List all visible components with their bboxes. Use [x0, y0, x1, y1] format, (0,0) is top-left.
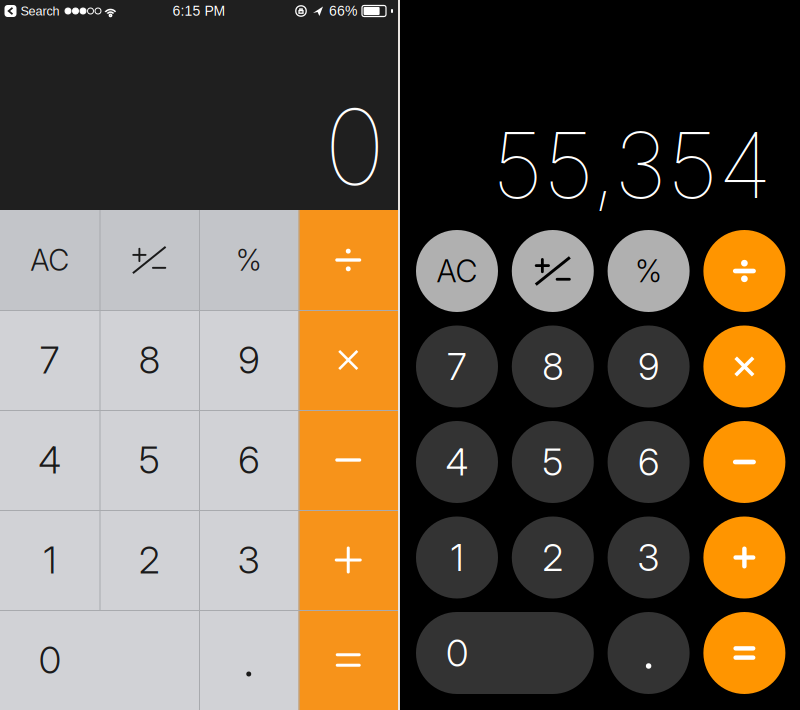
staticText: 5	[542, 439, 563, 485]
button[interactable]	[512, 230, 594, 312]
button[interactable]: 5	[99, 410, 199, 510]
button[interactable]: %	[608, 230, 690, 312]
staticText: 0	[39, 637, 61, 683]
staticText: 0	[446, 630, 468, 676]
button[interactable]	[199, 610, 298, 710]
button[interactable]	[703, 516, 785, 598]
button[interactable]: 8	[99, 310, 199, 410]
button[interactable]: 6	[608, 421, 690, 503]
staticText: 7	[40, 337, 60, 383]
staticText: AC	[436, 252, 477, 289]
button[interactable]	[298, 310, 398, 410]
button[interactable]	[703, 230, 785, 312]
staticText: 9	[238, 337, 259, 383]
staticText: AC	[30, 242, 69, 278]
staticText: 8	[542, 344, 563, 389]
button[interactable]: AC	[0, 210, 99, 310]
button[interactable]: 3	[608, 516, 690, 598]
button[interactable]	[99, 210, 199, 310]
staticText: 0	[324, 84, 385, 210]
button[interactable]: 3	[199, 510, 298, 610]
staticText: 1	[450, 535, 463, 580]
button[interactable]: 2	[99, 510, 199, 610]
button[interactable]: 7	[416, 325, 498, 407]
button[interactable]: 7	[0, 310, 99, 410]
button[interactable]: 5	[512, 421, 594, 503]
button[interactable]: 9	[199, 310, 298, 410]
button[interactable]: 9	[608, 325, 690, 407]
button[interactable]: 2	[512, 516, 594, 598]
button[interactable]	[703, 612, 785, 694]
staticText: 55,354	[492, 110, 772, 220]
button[interactable]	[608, 612, 690, 694]
staticText: 1	[43, 537, 56, 583]
button[interactable]: 0	[0, 610, 199, 710]
button[interactable]: 4	[416, 421, 498, 503]
button[interactable]: Back to Search	[0, 0, 59, 22]
staticText: 6	[638, 439, 659, 485]
button[interactable]: 1	[0, 510, 99, 610]
button[interactable]	[298, 410, 398, 510]
staticText: 8	[139, 337, 160, 383]
button[interactable]	[298, 210, 398, 310]
staticText: %	[236, 242, 262, 278]
button[interactable]	[703, 421, 785, 503]
button[interactable]	[298, 510, 398, 610]
staticText: 4	[38, 437, 61, 483]
button[interactable]	[298, 610, 398, 710]
staticText: 66%	[329, 3, 357, 19]
button[interactable]: AC	[416, 230, 498, 312]
button[interactable]: 4	[0, 410, 99, 510]
staticText: 3	[638, 535, 660, 580]
button[interactable]: 8	[512, 325, 594, 407]
button[interactable]: 6	[199, 410, 298, 510]
staticText: 2	[542, 535, 563, 580]
button[interactable]: 0	[416, 612, 594, 694]
button[interactable]: 1	[416, 516, 498, 598]
staticText: 6:15 PM	[172, 3, 225, 19]
button[interactable]	[703, 325, 785, 407]
staticText: 6	[238, 437, 259, 483]
staticText: 7	[447, 344, 467, 389]
staticText: Search	[20, 4, 59, 18]
staticText: 5	[139, 437, 160, 483]
staticText: 4	[445, 439, 468, 485]
staticText: %	[635, 252, 662, 289]
staticText: 3	[238, 537, 260, 583]
staticText: 2	[139, 537, 160, 583]
button[interactable]: %	[199, 210, 298, 310]
staticText: 9	[638, 344, 659, 389]
